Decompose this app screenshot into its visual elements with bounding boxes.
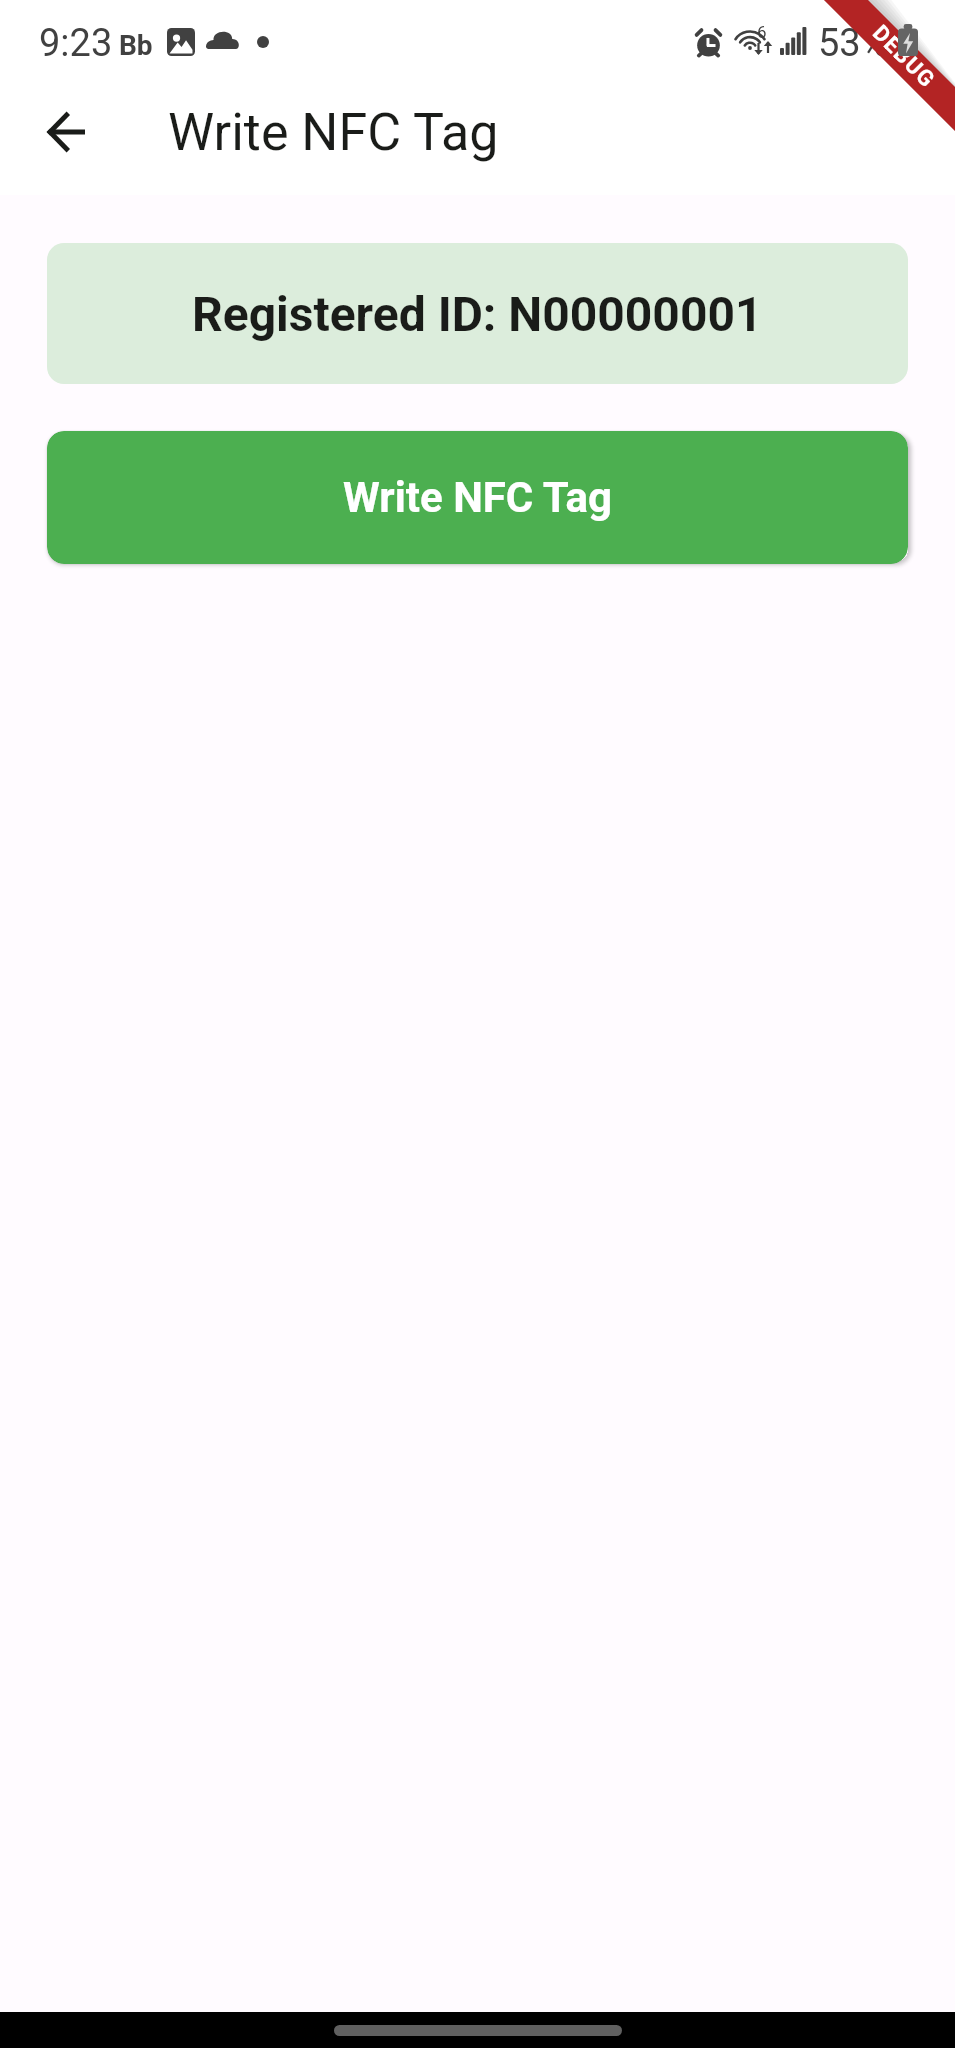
staticText: 9:23	[39, 21, 113, 66]
button[interactable]: Write NFC Tag	[47, 431, 908, 564]
staticText: DEBUG	[867, 20, 941, 94]
staticText: Registered ID: N00000001	[192, 286, 763, 342]
staticText: Write NFC Tag	[168, 102, 499, 163]
staticText: 6	[757, 22, 767, 42]
staticText: Write NFC Tag	[343, 473, 613, 522]
button[interactable]: Registered ID: N00000001	[47, 243, 908, 384]
staticText: Bb	[119, 29, 153, 62]
staticText: 53%	[818, 21, 889, 66]
button[interactable]: Back	[23, 88, 111, 176]
